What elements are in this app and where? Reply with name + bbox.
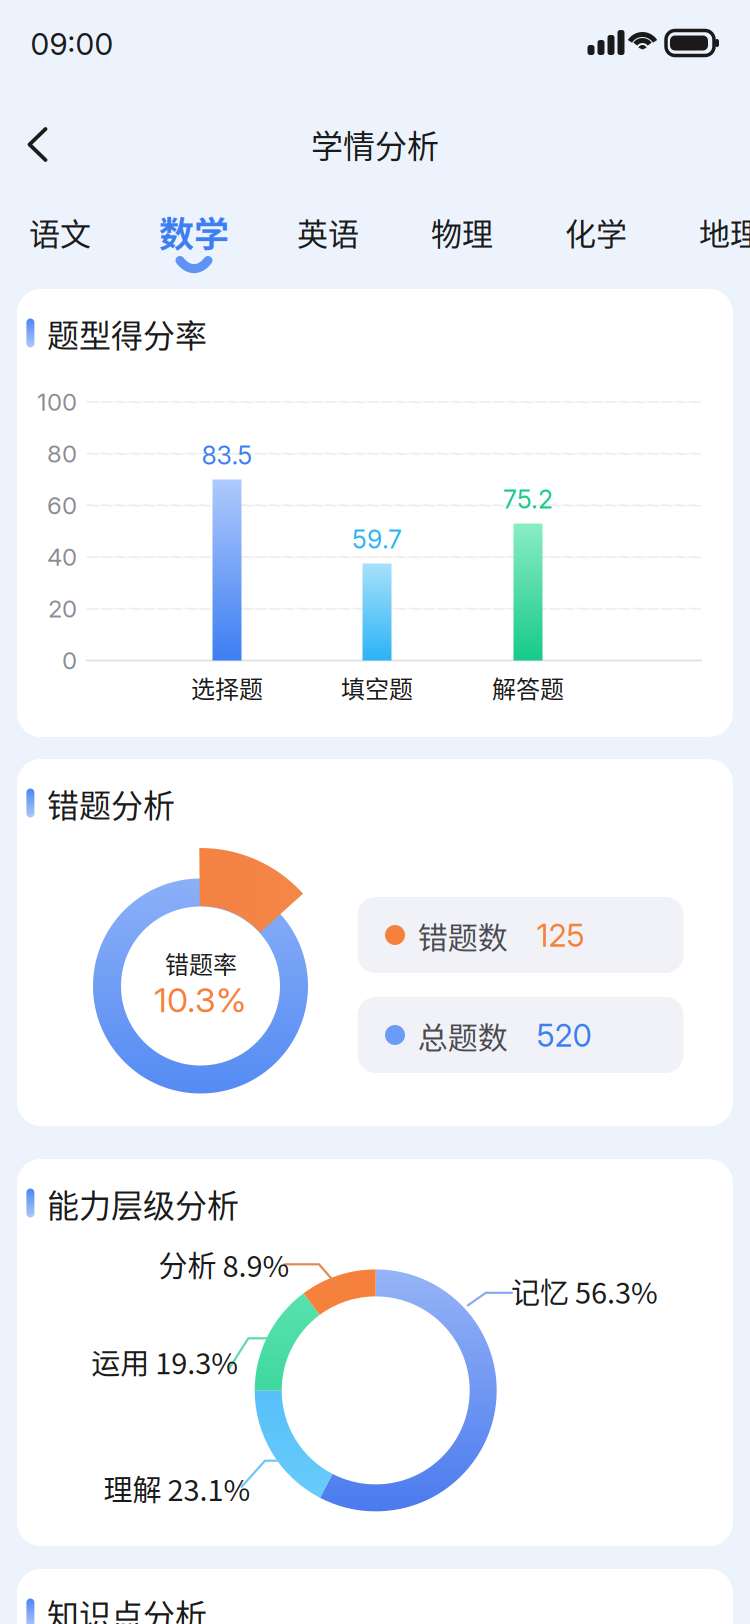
staticText: 错题率 (165, 946, 237, 980)
staticText: 错题分析 (47, 780, 175, 827)
staticText: 75.2 (503, 484, 553, 515)
staticText: 80 (47, 439, 77, 468)
staticText: 10.3% (154, 979, 246, 1020)
staticText: 记忆 56.3% (511, 1270, 658, 1312)
staticText: 英语 (297, 210, 359, 254)
staticText: 语文 (29, 210, 91, 254)
staticText: 数学 (159, 207, 229, 257)
staticText: 错题数 (418, 914, 508, 957)
staticText: 83.5 (201, 440, 252, 471)
button[interactable]: 物理 (397, 186, 527, 278)
staticText: 化学 (565, 210, 627, 254)
button[interactable]: 英语 (263, 186, 393, 278)
staticText: 59.7 (352, 524, 402, 555)
staticText: 520 (536, 1017, 591, 1054)
staticText: 100 (37, 387, 77, 416)
staticText: 物理 (431, 210, 493, 254)
staticText: 125 (536, 917, 584, 954)
staticText: 20 (48, 594, 77, 623)
staticText: 09:00 (30, 26, 113, 62)
staticText: 0 (62, 646, 77, 675)
button[interactable]: 化学 (531, 186, 661, 278)
button[interactable]: 地理 (665, 186, 750, 278)
staticText: 题型得分率 (47, 310, 207, 357)
staticText: 分析 8.9% (158, 1243, 289, 1285)
button[interactable]: Back (0, 104, 77, 184)
staticText: 选择题 (191, 670, 263, 705)
staticText: 能力层级分析 (47, 1180, 239, 1227)
staticText: 60 (47, 491, 77, 520)
staticText: 学情分析 (311, 121, 439, 167)
button[interactable]: 数学 (129, 186, 259, 278)
staticText: 40 (47, 543, 77, 572)
staticText: 运用 19.3% (91, 1341, 238, 1383)
staticText: 知识点分析 (47, 1590, 207, 1624)
staticText: 解答题 (492, 670, 564, 705)
button[interactable]: 语文 (0, 186, 125, 278)
staticText: 理解 23.1% (103, 1467, 250, 1509)
staticText: 填空题 (341, 670, 413, 705)
staticText: 总题数 (418, 1014, 508, 1057)
staticText: 地理 (699, 210, 750, 254)
